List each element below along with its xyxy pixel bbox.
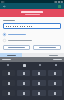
button[interactable]: More [48, 62, 64, 68]
button[interactable] [3, 23, 61, 29]
button[interactable]: Cancel [33, 45, 61, 50]
button[interactable] [3, 38, 61, 42]
button[interactable]: Key [48, 70, 62, 76]
button[interactable]: Key [2, 70, 15, 76]
button[interactable] [3, 32, 61, 36]
button[interactable]: Key [32, 90, 46, 96]
button[interactable]: Back [2, 4, 7, 9]
button[interactable]: Key [17, 90, 30, 96]
button[interactable]: Account [57, 4, 62, 9]
button[interactable]: Settings [16, 62, 32, 68]
button[interactable]: Key [48, 80, 62, 86]
button[interactable]: Key [2, 90, 15, 96]
button[interactable]: Key [2, 80, 15, 86]
button[interactable]: Key [32, 80, 46, 86]
button[interactable]: Key [48, 90, 62, 96]
button[interactable]: Key [17, 70, 30, 76]
button[interactable]: Voice input [32, 62, 48, 68]
button[interactable]: Key [17, 80, 30, 86]
button[interactable]: Key [32, 70, 46, 76]
button[interactable]: Confirm [3, 45, 30, 50]
button[interactable] [0, 53, 22, 57]
button[interactable]: Emoji [0, 62, 16, 68]
button[interactable] [43, 53, 64, 57]
